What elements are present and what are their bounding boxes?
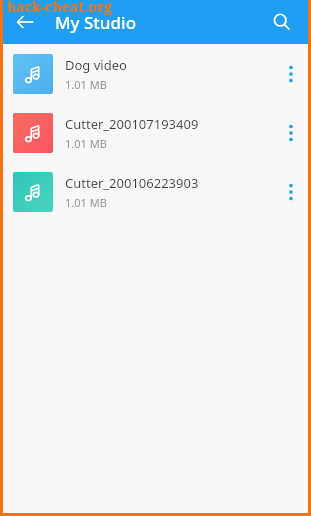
staticText: hack-cheat.org (7, 0, 113, 16)
staticText: 1.01 MB (65, 77, 107, 92)
button[interactable]: Dog video (3, 44, 308, 103)
button[interactable]: Search (260, 0, 304, 44)
button[interactable]: More options (274, 162, 308, 221)
staticText: 1.01 MB (65, 136, 107, 151)
button[interactable]: More options (274, 103, 308, 162)
button[interactable]: Cutter_200106223903 (3, 162, 308, 221)
button[interactable]: More options (274, 44, 308, 103)
button[interactable]: Back (3, 0, 47, 44)
staticText: My Studio (55, 11, 137, 34)
button[interactable]: Cutter_200107193409 (3, 103, 308, 162)
staticText: Cutter_200106223903 (65, 174, 199, 192)
staticText: Dog video (65, 56, 127, 74)
staticText: 1.01 MB (65, 195, 107, 210)
staticText: Cutter_200107193409 (65, 115, 199, 133)
